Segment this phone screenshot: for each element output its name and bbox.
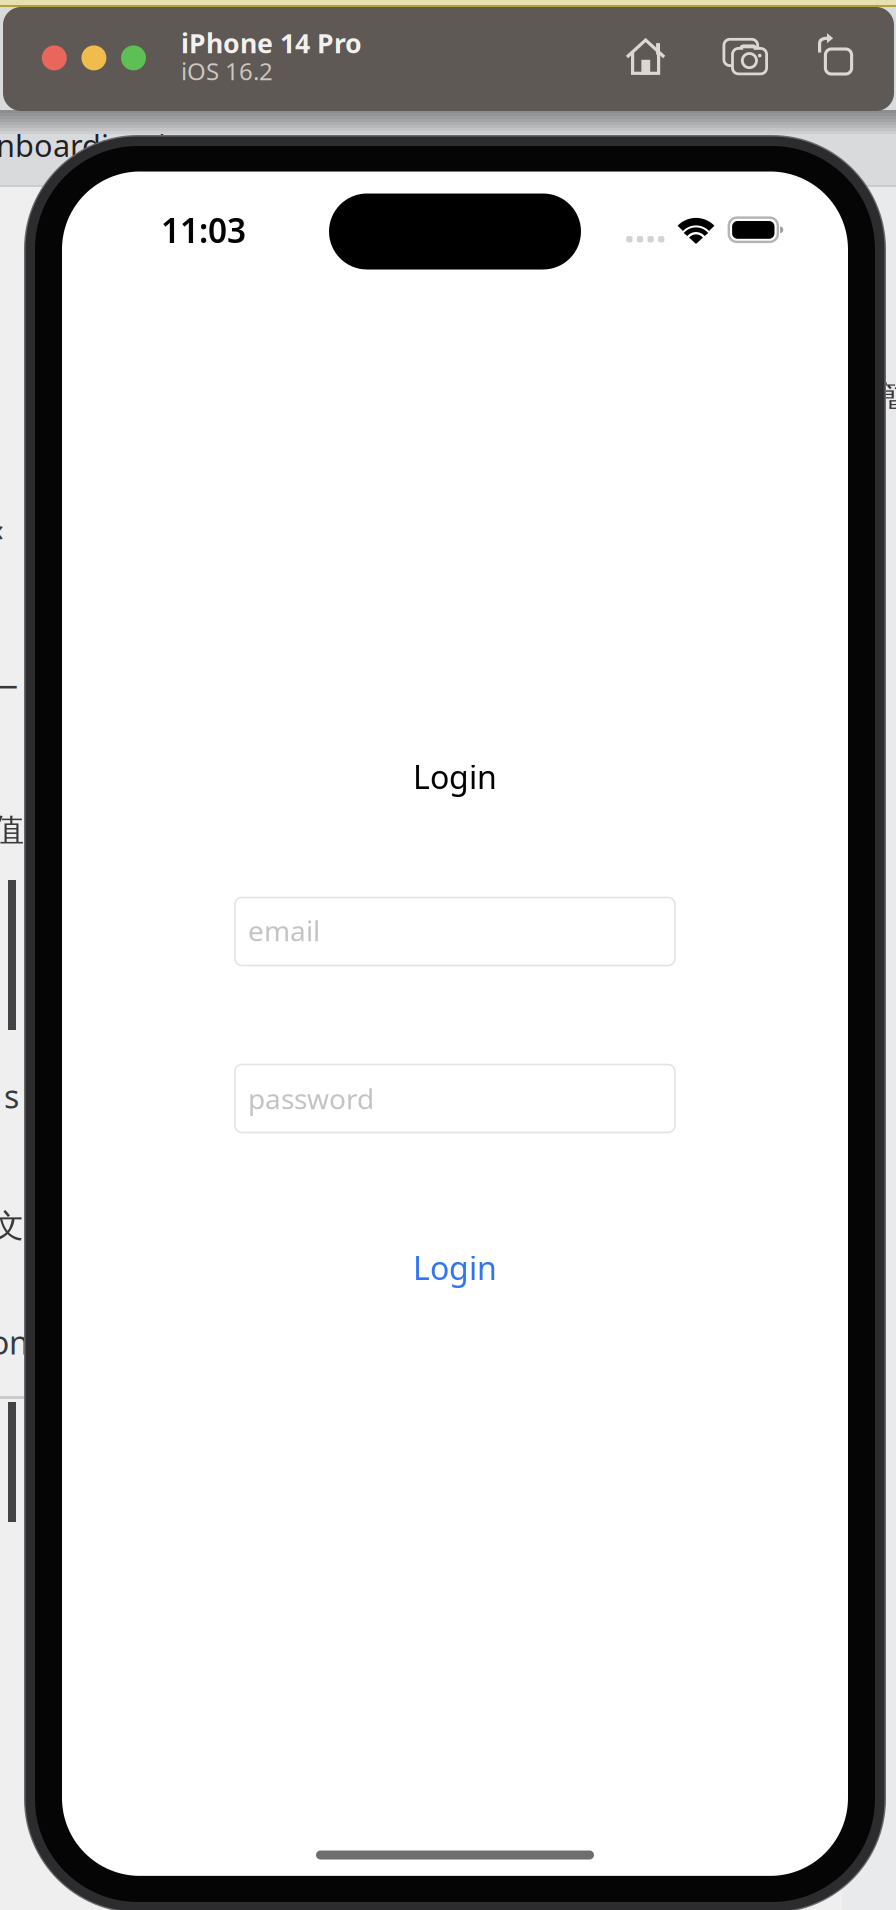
- staticText: ‹: [0, 508, 4, 550]
- staticText: 文: [0, 1206, 24, 1246]
- staticText: nboarding/i: [0, 125, 166, 165]
- button[interactable]: Login: [395, 1242, 515, 1292]
- staticText: — (: [0, 663, 36, 705]
- button[interactable]: Home: [626, 39, 666, 76]
- staticText: password: [248, 1080, 374, 1117]
- staticText: 11:03: [161, 208, 246, 252]
- staticText: Login: [413, 755, 497, 798]
- button[interactable]: Record screen: [818, 35, 854, 76]
- button[interactable]: Screenshot: [724, 39, 768, 75]
- staticText: iPhone 14 Pro: [181, 25, 362, 61]
- staticText: s: [4, 1075, 19, 1117]
- staticText: on: [0, 1321, 29, 1363]
- staticText: iOS 16.2: [181, 55, 273, 87]
- staticText: Login: [413, 1246, 497, 1289]
- staticText: 值: [0, 810, 24, 850]
- staticText: email: [248, 912, 320, 949]
- staticText: 簡: [878, 377, 896, 419]
